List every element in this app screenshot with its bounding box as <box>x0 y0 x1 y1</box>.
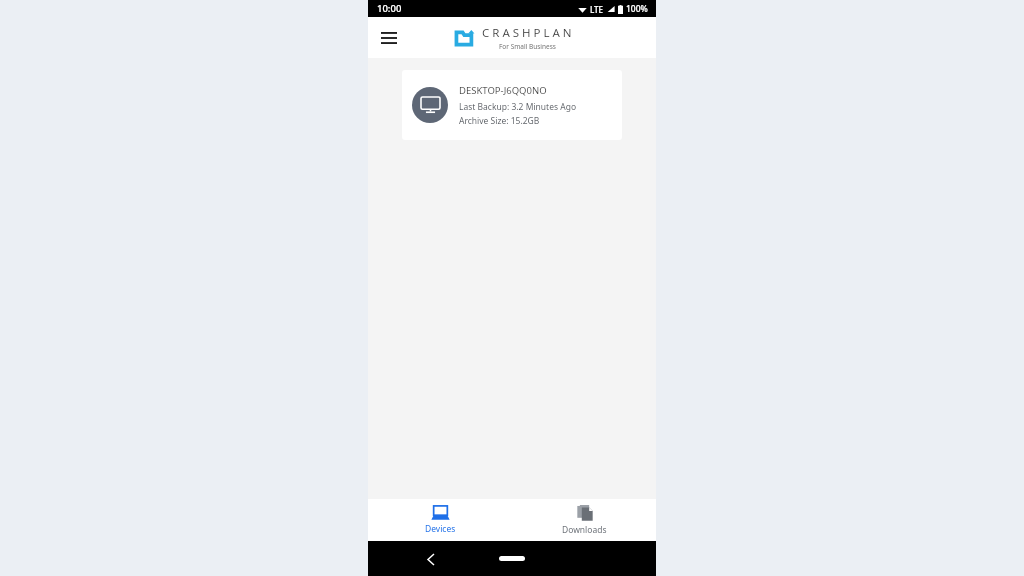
button[interactable]: DESKTOP-J6QQ0NO <box>402 70 622 140</box>
staticText: For Small Business <box>499 42 556 51</box>
button[interactable]: Open navigation menu <box>376 25 402 51</box>
button[interactable]: Back <box>420 548 442 570</box>
staticText: C R A S H P L A N <box>482 25 572 41</box>
staticText: Archive Size: 15.2GB <box>459 115 540 127</box>
staticText: DESKTOP-J6QQ0NO <box>459 84 547 97</box>
staticText: Downloads <box>562 524 607 536</box>
staticText: Devices <box>425 523 456 535</box>
button[interactable]: Downloads <box>512 499 656 541</box>
staticText: Last Backup: 3.2 Minutes Ago <box>459 101 577 113</box>
button[interactable]: Home <box>489 554 535 563</box>
staticText: 100% <box>626 3 648 15</box>
staticText: LTE <box>590 4 604 15</box>
button[interactable]: Devices <box>368 499 512 541</box>
staticText: 10:00 <box>377 2 402 15</box>
